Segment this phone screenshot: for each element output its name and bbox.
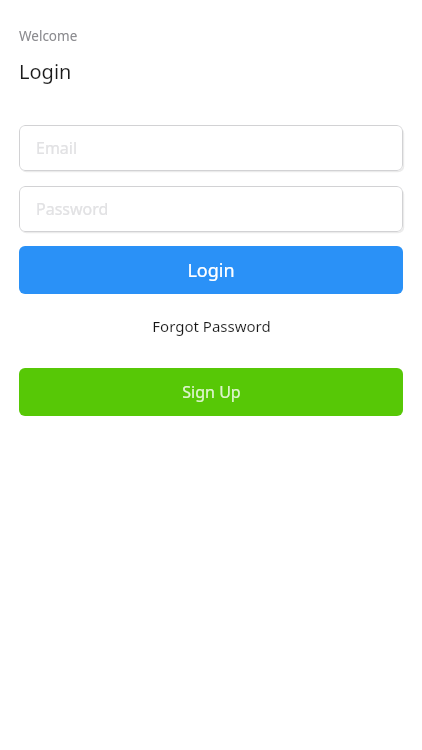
button[interactable]: Sign Up	[19, 368, 403, 416]
staticText: Forgot Password	[152, 316, 271, 336]
staticText: Email	[36, 137, 78, 159]
staticText: Password	[36, 198, 109, 220]
button[interactable]: Password	[19, 186, 403, 232]
button[interactable]: Login	[19, 246, 403, 294]
button[interactable]: Email	[19, 125, 403, 171]
staticText: Login	[19, 58, 72, 85]
button[interactable]: Forgot Password	[19, 311, 403, 341]
staticText: Sign Up	[182, 381, 241, 403]
staticText: Login	[187, 258, 235, 283]
staticText: Welcome	[19, 27, 78, 45]
